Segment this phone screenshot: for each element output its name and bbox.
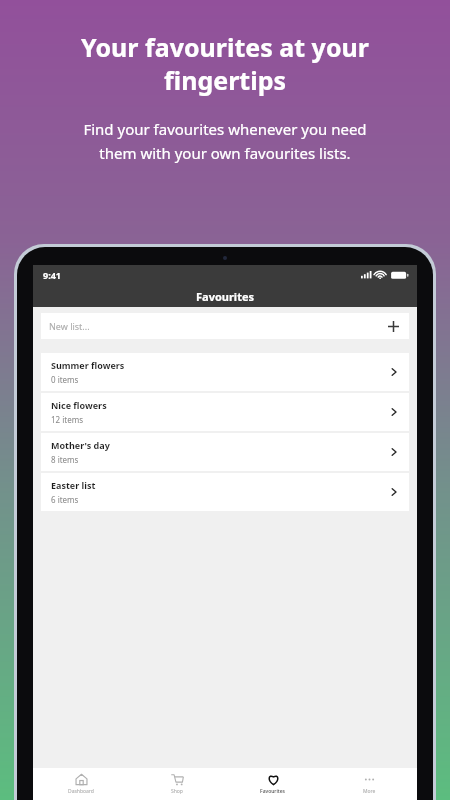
button[interactable]: Mother's day xyxy=(41,433,409,471)
staticText: 0 items xyxy=(51,374,79,385)
staticText: More xyxy=(363,788,376,795)
button[interactable]: Nice flowers xyxy=(41,393,409,431)
staticText: Dashboard xyxy=(68,788,94,795)
staticText: 6 items xyxy=(51,494,79,505)
button[interactable]: Shop xyxy=(129,768,225,800)
staticText: Summer flowers xyxy=(51,359,125,371)
staticText: 8 items xyxy=(51,454,79,465)
staticText: New list... xyxy=(49,320,90,332)
staticText: 9:41 xyxy=(43,269,61,281)
staticText: Easter list xyxy=(51,479,96,491)
button[interactable]: Summer flowers xyxy=(41,353,409,391)
button[interactable]: Favourites xyxy=(225,768,321,800)
button[interactable]: More xyxy=(321,768,417,800)
button[interactable]: Add list xyxy=(385,318,401,334)
button[interactable]: Dashboard xyxy=(33,768,129,800)
staticText: Your favourites at your fingertips xyxy=(81,30,369,97)
button[interactable]: Easter list xyxy=(41,473,409,511)
staticText: Shop xyxy=(171,788,183,795)
button[interactable]: New list... xyxy=(41,313,409,339)
staticText: 12 items xyxy=(51,414,84,425)
staticText: Favourites xyxy=(260,788,286,795)
staticText: Find your favourites whenever you need t… xyxy=(83,119,367,163)
staticText: Favourites xyxy=(196,289,255,304)
staticText: Nice flowers xyxy=(51,399,107,411)
staticText: Mother's day xyxy=(51,439,110,451)
